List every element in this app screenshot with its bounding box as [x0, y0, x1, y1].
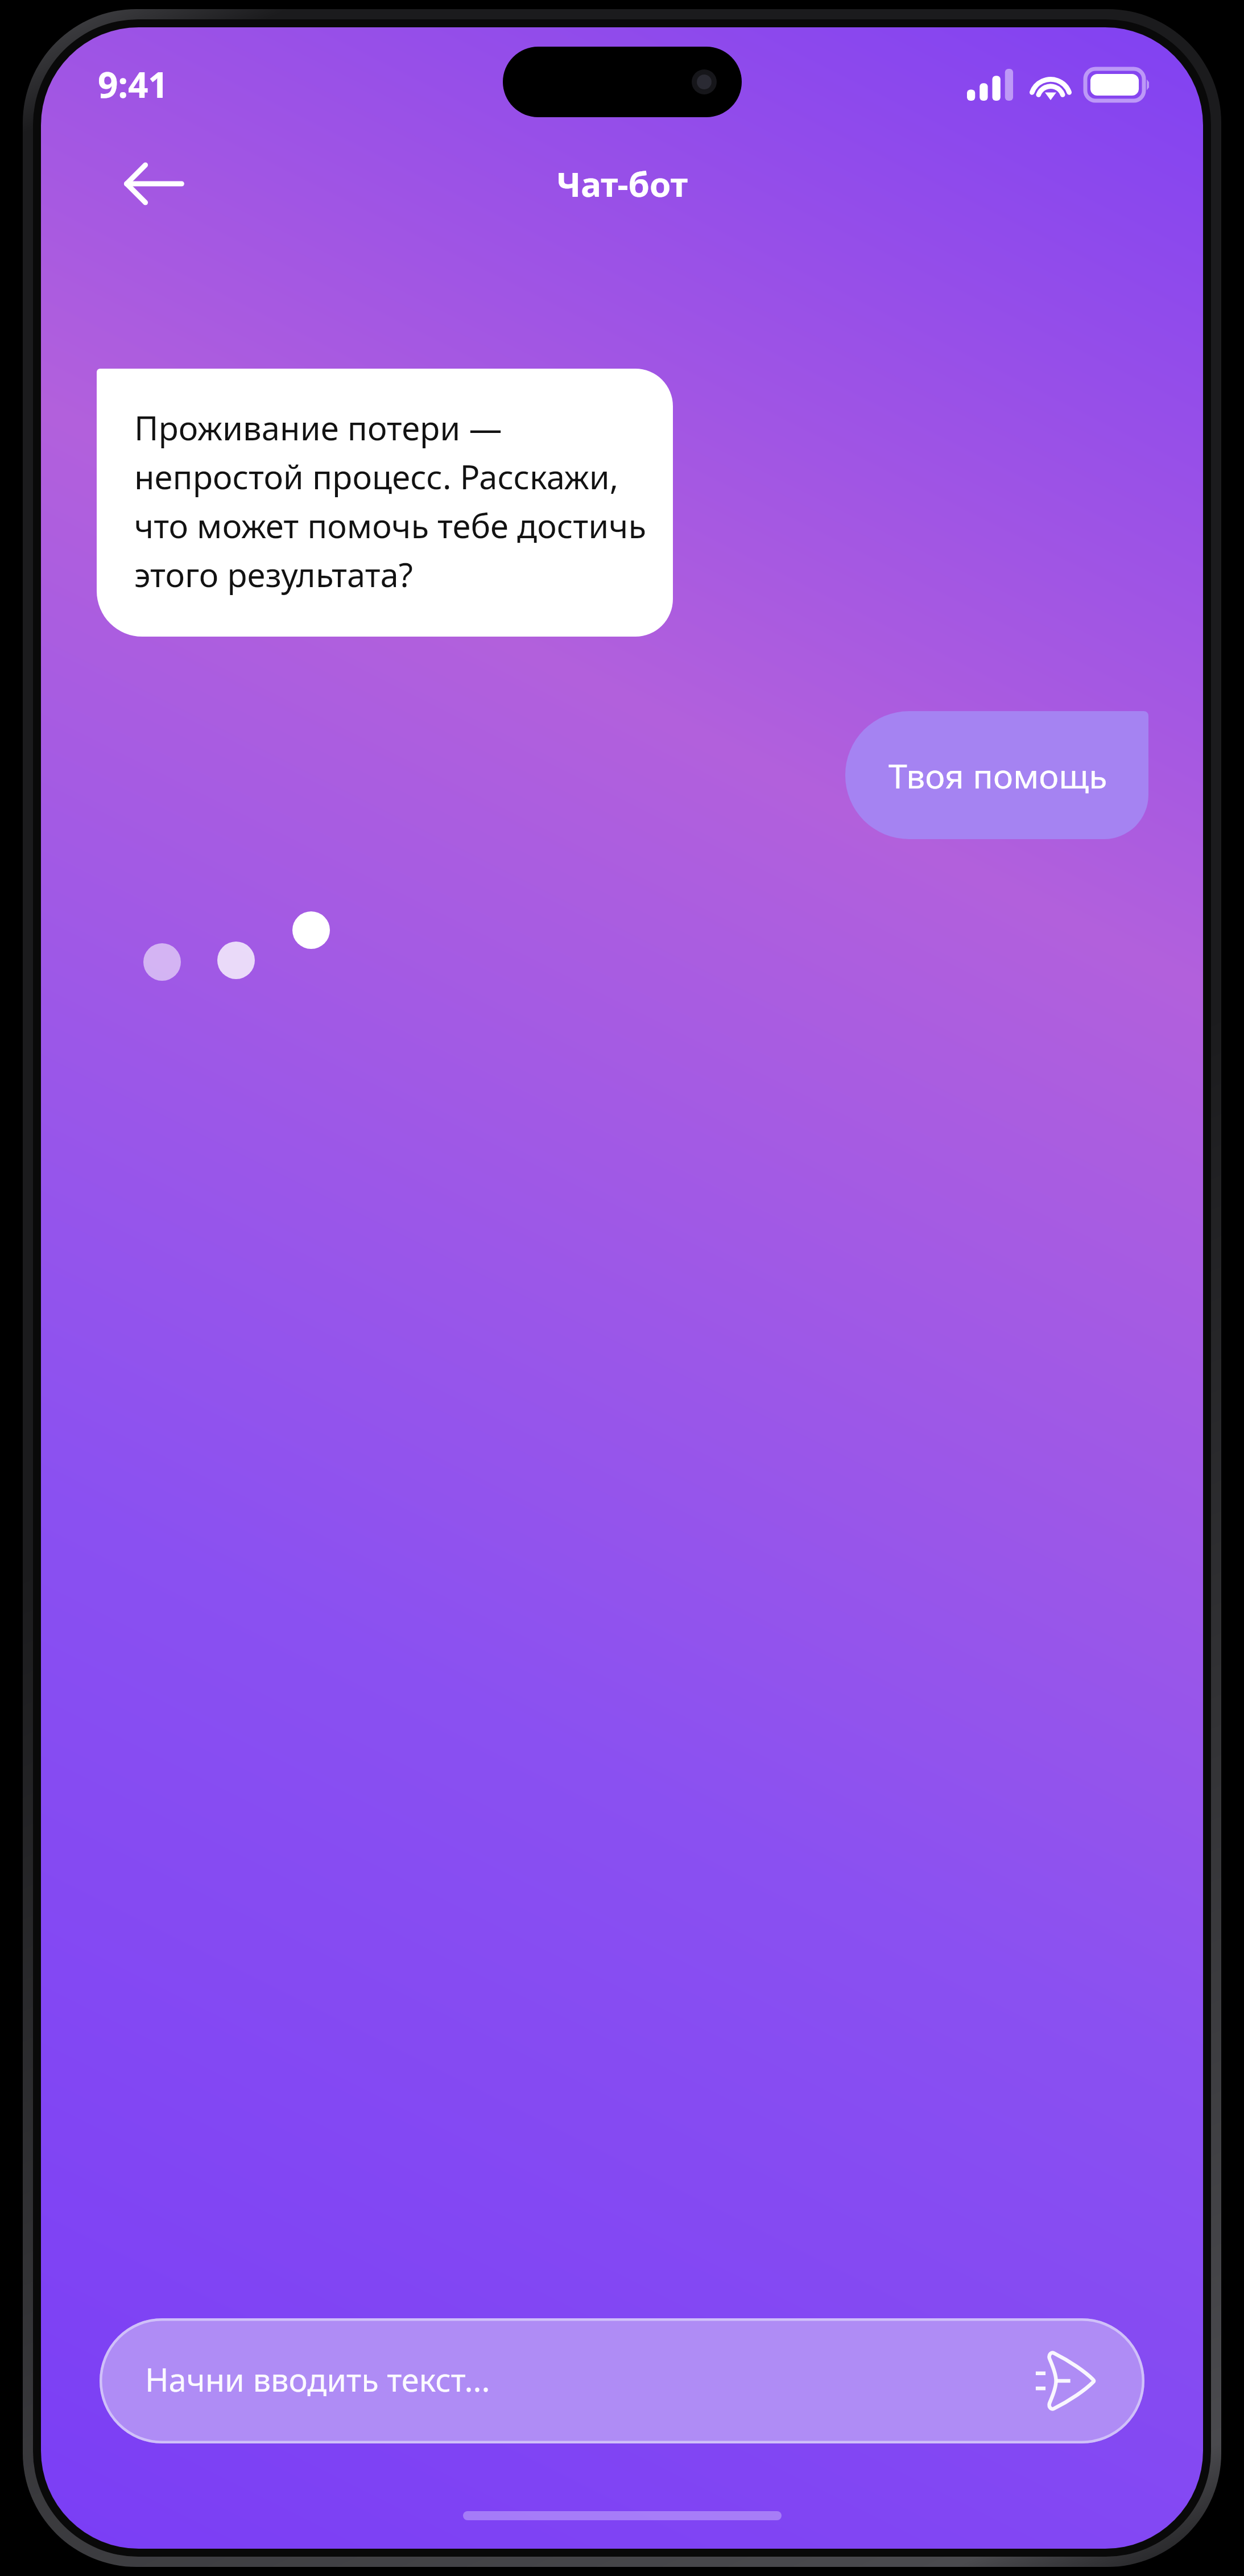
staticText: Проживание потери — непростой процесс. Р… [134, 405, 647, 597]
button[interactable]: Проживание потери — непростой процесс. Р… [97, 369, 673, 637]
staticText: 9:41 [98, 60, 168, 108]
button[interactable]: Начни вводить текст... [100, 2318, 1144, 2443]
button[interactable]: Твоя помощь [845, 711, 1148, 839]
staticText: Твоя помощь [888, 753, 1107, 798]
button[interactable]: Назад [121, 150, 188, 217]
staticText: Начни вводить текст... [145, 2358, 490, 2401]
staticText: Чат-бот [556, 160, 688, 207]
button[interactable]: Отправить [1026, 2338, 1111, 2424]
